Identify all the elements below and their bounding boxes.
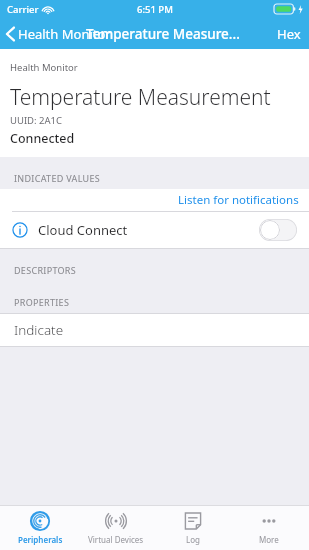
staticText: Health Monitor	[10, 61, 78, 74]
staticText: PROPERTIES	[14, 296, 70, 308]
button[interactable]: Cloud Connect toggle	[259, 219, 297, 241]
button[interactable]: Virtual Devices	[80, 506, 152, 550]
staticText: 6:51 PM	[137, 3, 173, 16]
staticText: Cloud Connect	[38, 221, 128, 239]
staticText: Health Monitor	[18, 25, 111, 43]
staticText: Hex	[277, 25, 301, 43]
button[interactable]: More	[233, 506, 305, 550]
staticText: UUID: 2A1C	[10, 114, 63, 127]
staticText: INDICATED VALUES	[14, 172, 100, 184]
button[interactable]: Listen for notifications	[0, 189, 309, 211]
staticText: Connected	[10, 130, 75, 147]
button[interactable]: Health Monitor	[0, 21, 115, 47]
staticText: Listen for notifications	[178, 192, 299, 208]
staticText: Indicate	[14, 321, 64, 339]
button[interactable]: Log	[157, 506, 229, 550]
other: Virtual Devices	[106, 511, 126, 531]
staticText: Peripherals	[18, 534, 63, 545]
button[interactable]: Hex	[269, 19, 309, 49]
staticText: DESCRIPTORS	[14, 264, 76, 276]
other: Log	[183, 511, 203, 531]
other: More	[259, 511, 279, 531]
staticText: Temperature Measure...	[86, 25, 240, 43]
staticText: More	[259, 534, 279, 545]
button[interactable]: Indicate	[0, 314, 309, 346]
staticText: Carrier	[7, 3, 39, 16]
staticText: Log	[186, 534, 200, 545]
button[interactable]: Info	[0, 212, 309, 248]
button[interactable]: Peripherals	[4, 506, 76, 550]
staticText: Temperature Measurement	[10, 83, 271, 112]
other: Info	[12, 222, 28, 238]
other: Peripherals	[30, 511, 50, 531]
staticText: Virtual Devices	[88, 534, 144, 545]
